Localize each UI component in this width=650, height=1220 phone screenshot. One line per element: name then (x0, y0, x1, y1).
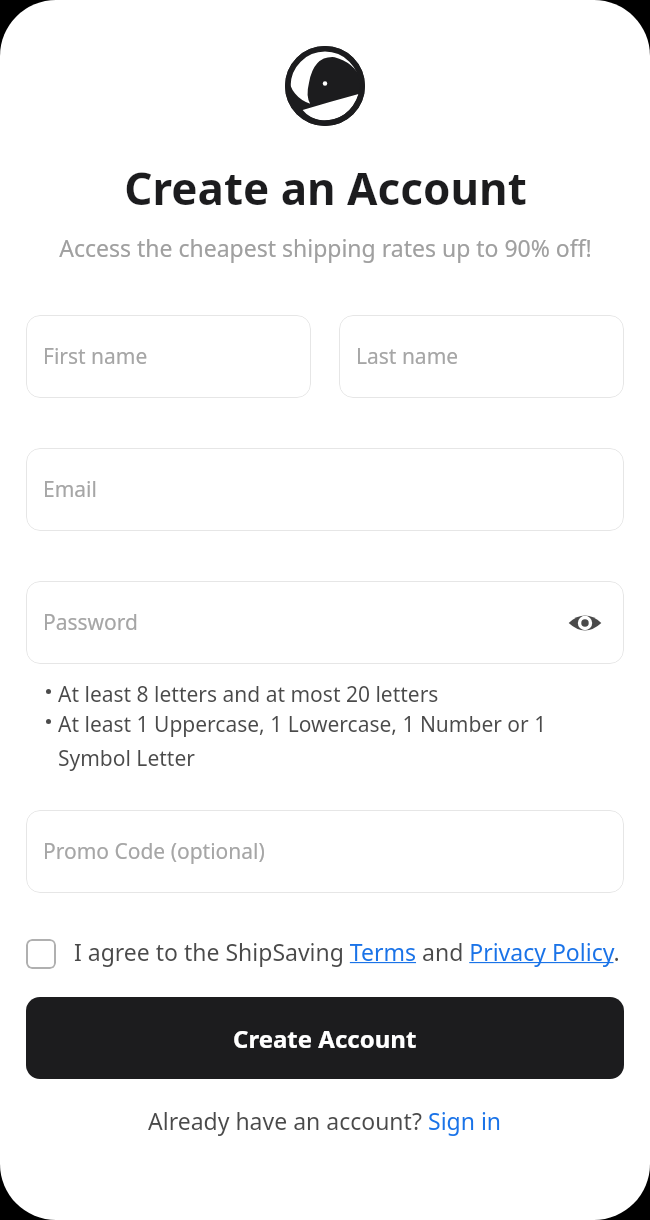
button[interactable]: Email (26, 448, 624, 531)
button[interactable]: Create Account (26, 997, 624, 1079)
staticText: Password (43, 608, 138, 637)
staticText: At least 1 Uppercase, 1 Lowercase, 1 Num… (58, 710, 624, 772)
staticText: Email (43, 475, 97, 504)
staticText: At least 8 letters and at most 20 letter… (58, 680, 439, 709)
button[interactable]: Sign in (428, 1105, 502, 1136)
staticText: First name (43, 342, 148, 371)
staticText: Already have an account? (148, 1105, 428, 1136)
button[interactable]: First name (26, 315, 311, 398)
button[interactable]: Last name (339, 315, 624, 398)
button[interactable]: Show password (563, 601, 607, 645)
button[interactable]: Password (26, 581, 624, 664)
staticText: Create an Account (124, 158, 527, 218)
staticText: Create Account (233, 1022, 417, 1055)
staticText: Access the cheapest shipping rates up to… (59, 232, 592, 263)
staticText: Last name (356, 342, 459, 371)
button[interactable]: I agree to the ShipSaving Terms and Priv… (74, 936, 620, 967)
staticText: Promo Code (optional) (43, 837, 265, 866)
button[interactable]: Agree to terms (26, 939, 56, 969)
button[interactable]: Promo Code (optional) (26, 810, 624, 893)
